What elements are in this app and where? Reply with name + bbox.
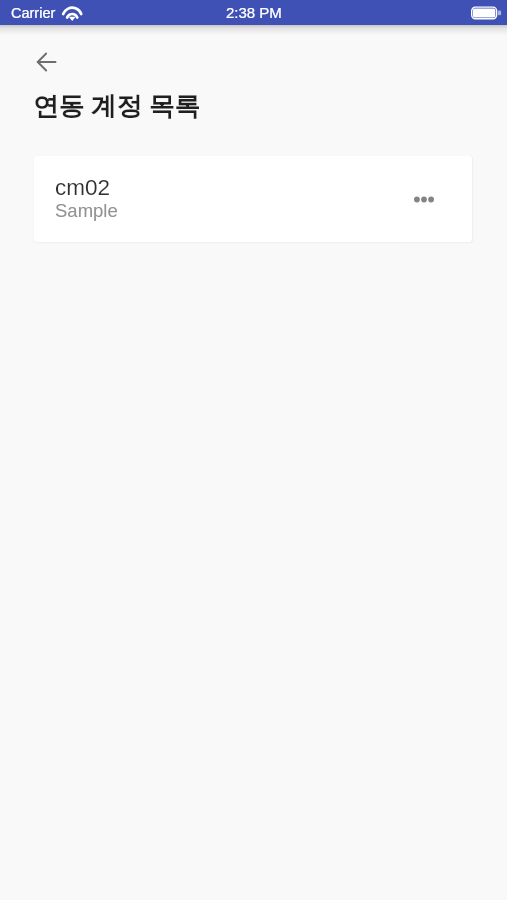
staticText: Carrier xyxy=(11,5,56,21)
staticText: 2:38 PM xyxy=(226,4,282,21)
staticText: cm02 xyxy=(55,175,111,200)
button[interactable]: cm02 xyxy=(34,156,472,242)
staticText: Sample xyxy=(55,200,118,221)
staticText: 연동 계정 목록 xyxy=(33,88,200,123)
button[interactable]: More options xyxy=(407,182,441,216)
button[interactable]: Back xyxy=(24,39,69,84)
